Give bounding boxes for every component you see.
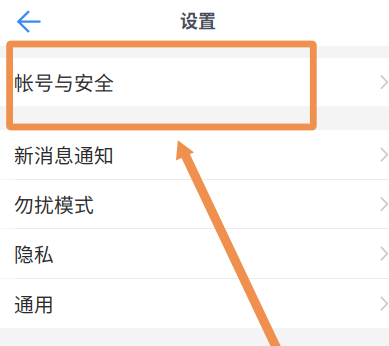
staticText: 通用 xyxy=(14,289,54,318)
staticText: 隐私 xyxy=(14,239,54,268)
staticText: 帐号与安全 xyxy=(14,68,114,96)
staticText: 设置 xyxy=(180,7,216,33)
button[interactable]: 帐号与安全 xyxy=(0,58,389,106)
button[interactable]: 新消息通知 xyxy=(0,130,389,179)
button[interactable]: 通用 xyxy=(0,279,389,328)
staticText: 新消息通知 xyxy=(14,140,114,169)
button[interactable]: 勿扰模式 xyxy=(0,180,389,228)
staticText: 勿扰模式 xyxy=(14,190,94,218)
button[interactable]: 隐私 xyxy=(0,229,389,278)
button[interactable]: Back xyxy=(0,0,47,46)
